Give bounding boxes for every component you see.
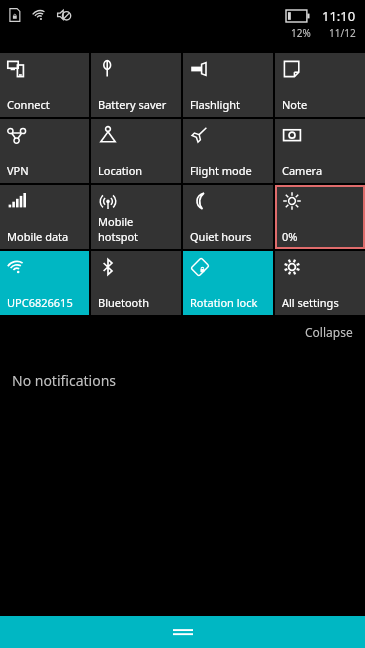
staticText: Flashlight — [190, 97, 240, 112]
button[interactable]: Flashlight — [183, 53, 273, 117]
button[interactable]: Location — [91, 119, 181, 183]
button[interactable]: Rotation lock — [183, 251, 273, 315]
staticText: Quiet hours — [190, 229, 252, 244]
staticText: 11:10 — [322, 7, 356, 25]
button[interactable]: Note — [275, 53, 365, 117]
button[interactable]: 0% — [275, 185, 365, 249]
button[interactable]: Camera — [275, 119, 365, 183]
staticText: Camera — [282, 163, 323, 178]
button[interactable]: Battery saver — [91, 53, 181, 117]
staticText: Mobile data — [7, 229, 69, 244]
staticText: 12% — [291, 26, 311, 40]
button[interactable]: Mobile hotspot — [91, 185, 181, 249]
staticText: Collapse — [305, 324, 353, 340]
staticText: Mobile hotspot — [98, 214, 139, 244]
staticText: Location — [98, 163, 143, 178]
staticText: 11/12 — [329, 26, 356, 40]
staticText: No notifications — [12, 371, 117, 390]
button[interactable]: Flight mode — [183, 119, 273, 183]
staticText: Connect — [7, 97, 50, 112]
staticText: UPC6826615 — [7, 295, 73, 310]
button[interactable]: Mobile data — [0, 185, 89, 249]
staticText: Bluetooth — [98, 295, 150, 310]
button[interactable]: Connect — [0, 53, 89, 117]
button[interactable]: VPN — [0, 119, 89, 183]
button[interactable]: Menu — [0, 616, 365, 648]
staticText: Note — [282, 97, 308, 112]
staticText: VPN — [7, 163, 29, 178]
staticText: Flight mode — [190, 163, 252, 178]
staticText: Rotation lock — [190, 295, 258, 310]
button[interactable]: Collapse — [293, 318, 365, 346]
button[interactable]: Quiet hours — [183, 185, 273, 249]
button[interactable]: UPC6826615 — [0, 251, 89, 315]
staticText: All settings — [282, 295, 339, 310]
button[interactable]: Bluetooth — [91, 251, 181, 315]
button[interactable]: All settings — [275, 251, 365, 315]
staticText: 0% — [282, 229, 298, 244]
staticText: Battery saver — [98, 97, 167, 112]
